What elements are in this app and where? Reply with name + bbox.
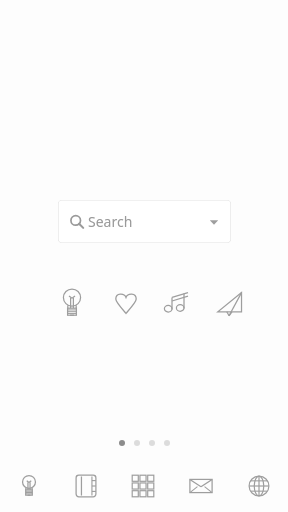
button[interactable]: Ideas (52, 283, 92, 323)
button[interactable]: Send (214, 283, 246, 323)
button[interactable]: Favorites (106, 283, 146, 323)
staticText: Search (88, 212, 133, 231)
button[interactable]: Music (160, 283, 200, 323)
button[interactable]: Search (58, 200, 231, 243)
button[interactable]: Browser (230, 466, 288, 506)
button[interactable]: Mail (172, 466, 230, 506)
button[interactable] (162, 438, 172, 448)
button[interactable]: All apps (114, 466, 172, 506)
button[interactable]: Notebook (57, 466, 114, 506)
button[interactable] (147, 438, 157, 448)
button[interactable]: Ideas (0, 466, 57, 506)
button[interactable] (117, 438, 127, 448)
button[interactable] (132, 438, 142, 448)
